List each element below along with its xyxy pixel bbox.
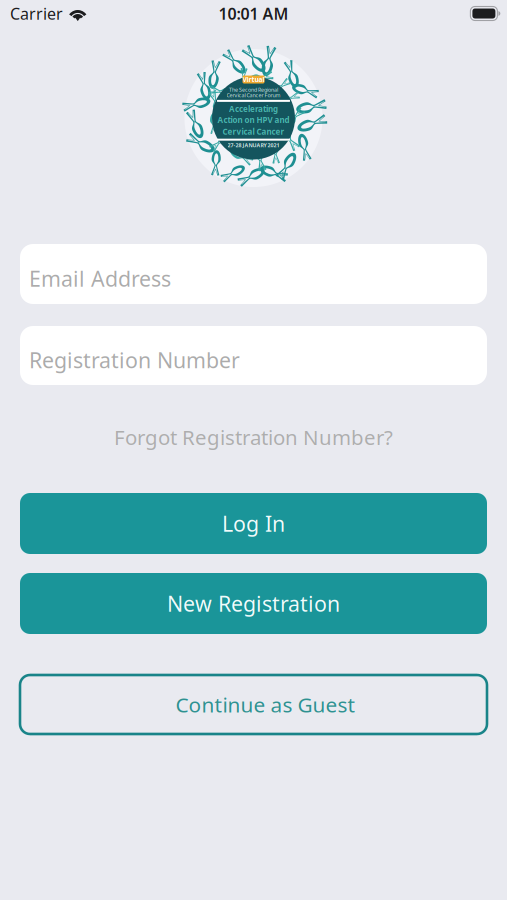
staticText: 10:01 AM xyxy=(218,3,288,24)
staticText: The Second Regional xyxy=(229,86,278,93)
staticText: Action on HPV and xyxy=(217,114,289,125)
button[interactable]: New Registration xyxy=(0,573,507,634)
staticText: Accelerating xyxy=(229,104,278,114)
staticText: 27-28 JANUARY 2021 xyxy=(227,142,279,149)
staticText: Forgot Registration Number? xyxy=(114,423,393,451)
staticText: Log In xyxy=(222,509,285,538)
staticText: Registration Number xyxy=(29,346,240,374)
staticText: Email Address xyxy=(29,264,171,293)
staticText: Cervical Cancer Forum xyxy=(226,92,280,99)
button[interactable]: Email Address xyxy=(0,244,507,304)
button[interactable]: Forgot Registration Number? xyxy=(0,408,507,466)
staticText: Continue as Guest xyxy=(175,690,355,719)
staticText: Virtual xyxy=(242,75,264,84)
staticText: New Registration xyxy=(167,589,340,618)
staticText: Cervical Cancer xyxy=(222,126,284,137)
button[interactable]: Continue as Guest xyxy=(0,675,507,734)
button[interactable]: Log In xyxy=(0,493,507,554)
button[interactable]: Registration Number xyxy=(0,326,507,385)
staticText: Carrier xyxy=(10,3,63,24)
